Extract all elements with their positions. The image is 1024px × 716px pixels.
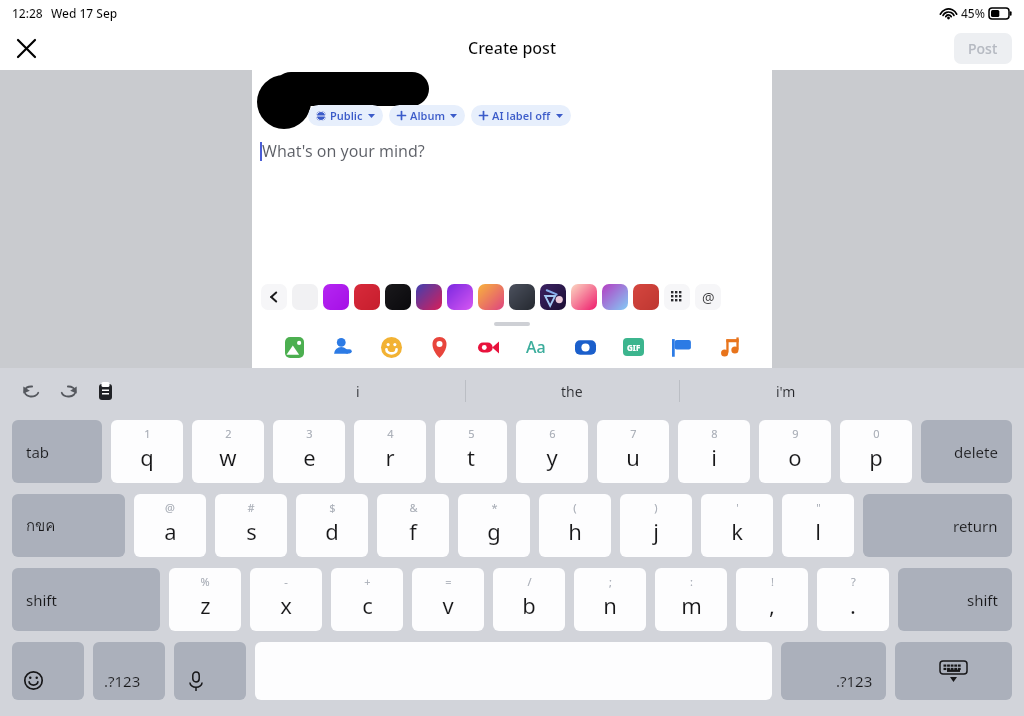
staticText: f (409, 516, 417, 546)
staticText: Public (330, 108, 363, 123)
button[interactable]: Photo (277, 330, 311, 364)
button[interactable]: shift (898, 568, 1012, 631)
button[interactable]: Background 8 (509, 284, 535, 310)
staticText: 12:28 (12, 5, 43, 21)
button[interactable]: 2 (192, 420, 264, 483)
button[interactable]: Feeling (374, 330, 408, 364)
button[interactable]: Background 6 (447, 284, 473, 310)
button[interactable]: ) (620, 494, 692, 557)
staticText: z (200, 590, 211, 620)
staticText: o (788, 442, 802, 472)
button[interactable]: Background 10 (571, 284, 597, 310)
staticText: 8 (711, 426, 718, 441)
staticText: h (568, 516, 582, 546)
button[interactable]: * (458, 494, 530, 557)
button[interactable]: Public (308, 105, 383, 126)
button[interactable]: the (465, 368, 679, 414)
button[interactable]: Dictate (174, 642, 246, 700)
button[interactable]: delete (921, 420, 1012, 483)
button[interactable]: # (215, 494, 287, 557)
button[interactable]: tab (12, 420, 102, 483)
button[interactable]: / (493, 568, 565, 631)
button[interactable]: & (377, 494, 449, 557)
button[interactable]: Close (8, 30, 44, 66)
button[interactable]: 7 (597, 420, 669, 483)
button[interactable]: Background 11 (602, 284, 628, 310)
button[interactable]: Mention (695, 284, 721, 310)
staticText: j (653, 516, 659, 546)
button[interactable]: Background 4 (385, 284, 411, 310)
button[interactable]: GIF (616, 330, 650, 364)
button[interactable]: Paste (90, 376, 120, 406)
button[interactable]: 4 (354, 420, 426, 483)
button[interactable]: 8 (678, 420, 750, 483)
button[interactable]: " (782, 494, 854, 557)
staticText: r (385, 442, 395, 472)
button[interactable]: Background 9 (540, 284, 566, 310)
button[interactable]: .?123 (781, 642, 886, 700)
button[interactable]: @ (134, 494, 206, 557)
button[interactable]: ' (701, 494, 773, 557)
staticText: @ (702, 288, 715, 307)
staticText: # (247, 500, 255, 515)
staticText: i (711, 442, 717, 472)
button[interactable]: Post (954, 33, 1012, 64)
button[interactable]: i (251, 368, 465, 414)
button[interactable]: $ (296, 494, 368, 557)
button[interactable]: Flag (665, 330, 699, 364)
staticText: u (626, 442, 640, 472)
staticText: 4 (387, 426, 394, 441)
staticText: a (164, 516, 177, 546)
button[interactable]: Live video (471, 330, 505, 364)
button[interactable]: 0 (840, 420, 912, 483)
button[interactable]: Location (422, 330, 456, 364)
staticText: v (442, 590, 454, 620)
staticText: 5 (468, 426, 475, 441)
button[interactable]: AI label off (471, 105, 571, 126)
button[interactable]: 5 (435, 420, 507, 483)
button[interactable]: กขค (12, 494, 125, 557)
button[interactable]: - (250, 568, 322, 631)
button[interactable]: shift (12, 568, 160, 631)
button[interactable]: Background 2 (323, 284, 349, 310)
button[interactable]: i'm (679, 368, 893, 414)
button[interactable]: .?123 (93, 642, 165, 700)
staticText: shift (967, 590, 998, 610)
staticText: 45% (961, 5, 985, 21)
button[interactable]: % (169, 568, 241, 631)
button[interactable]: Back (261, 284, 287, 310)
staticText: * (491, 500, 498, 515)
button[interactable]: Background 12 (633, 284, 659, 310)
button[interactable]: 3 (273, 420, 345, 483)
button[interactable]: 6 (516, 420, 588, 483)
button[interactable]: Text (519, 330, 553, 364)
staticText: / (527, 574, 532, 589)
button[interactable]: ; (574, 568, 646, 631)
button[interactable]: More backgrounds (664, 284, 690, 310)
button[interactable]: Album (389, 105, 465, 126)
staticText: k (731, 516, 743, 546)
button[interactable]: : (655, 568, 727, 631)
staticText: 9 (792, 426, 799, 441)
button[interactable]: Background 5 (416, 284, 442, 310)
button[interactable]: Hide keyboard (895, 642, 1012, 700)
button[interactable]: 1 (111, 420, 183, 483)
button[interactable]: Emoji (12, 642, 84, 700)
button[interactable]: Background 3 (354, 284, 380, 310)
button[interactable]: Undo (16, 376, 46, 406)
button[interactable]: Background 7 (478, 284, 504, 310)
button[interactable]: Background 1 (292, 284, 318, 310)
button[interactable]: Music (713, 330, 747, 364)
button[interactable]: + (331, 568, 403, 631)
button[interactable]: ? (817, 568, 889, 631)
button[interactable]: Tag people (325, 330, 359, 364)
button[interactable]: = (412, 568, 484, 631)
button[interactable]: ( (539, 494, 611, 557)
button[interactable]: 9 (759, 420, 831, 483)
button[interactable]: ! (736, 568, 808, 631)
staticText: ? (851, 574, 856, 589)
button[interactable]: return (863, 494, 1012, 557)
button[interactable]: Camera (568, 330, 602, 364)
button[interactable]: Redo (53, 376, 83, 406)
